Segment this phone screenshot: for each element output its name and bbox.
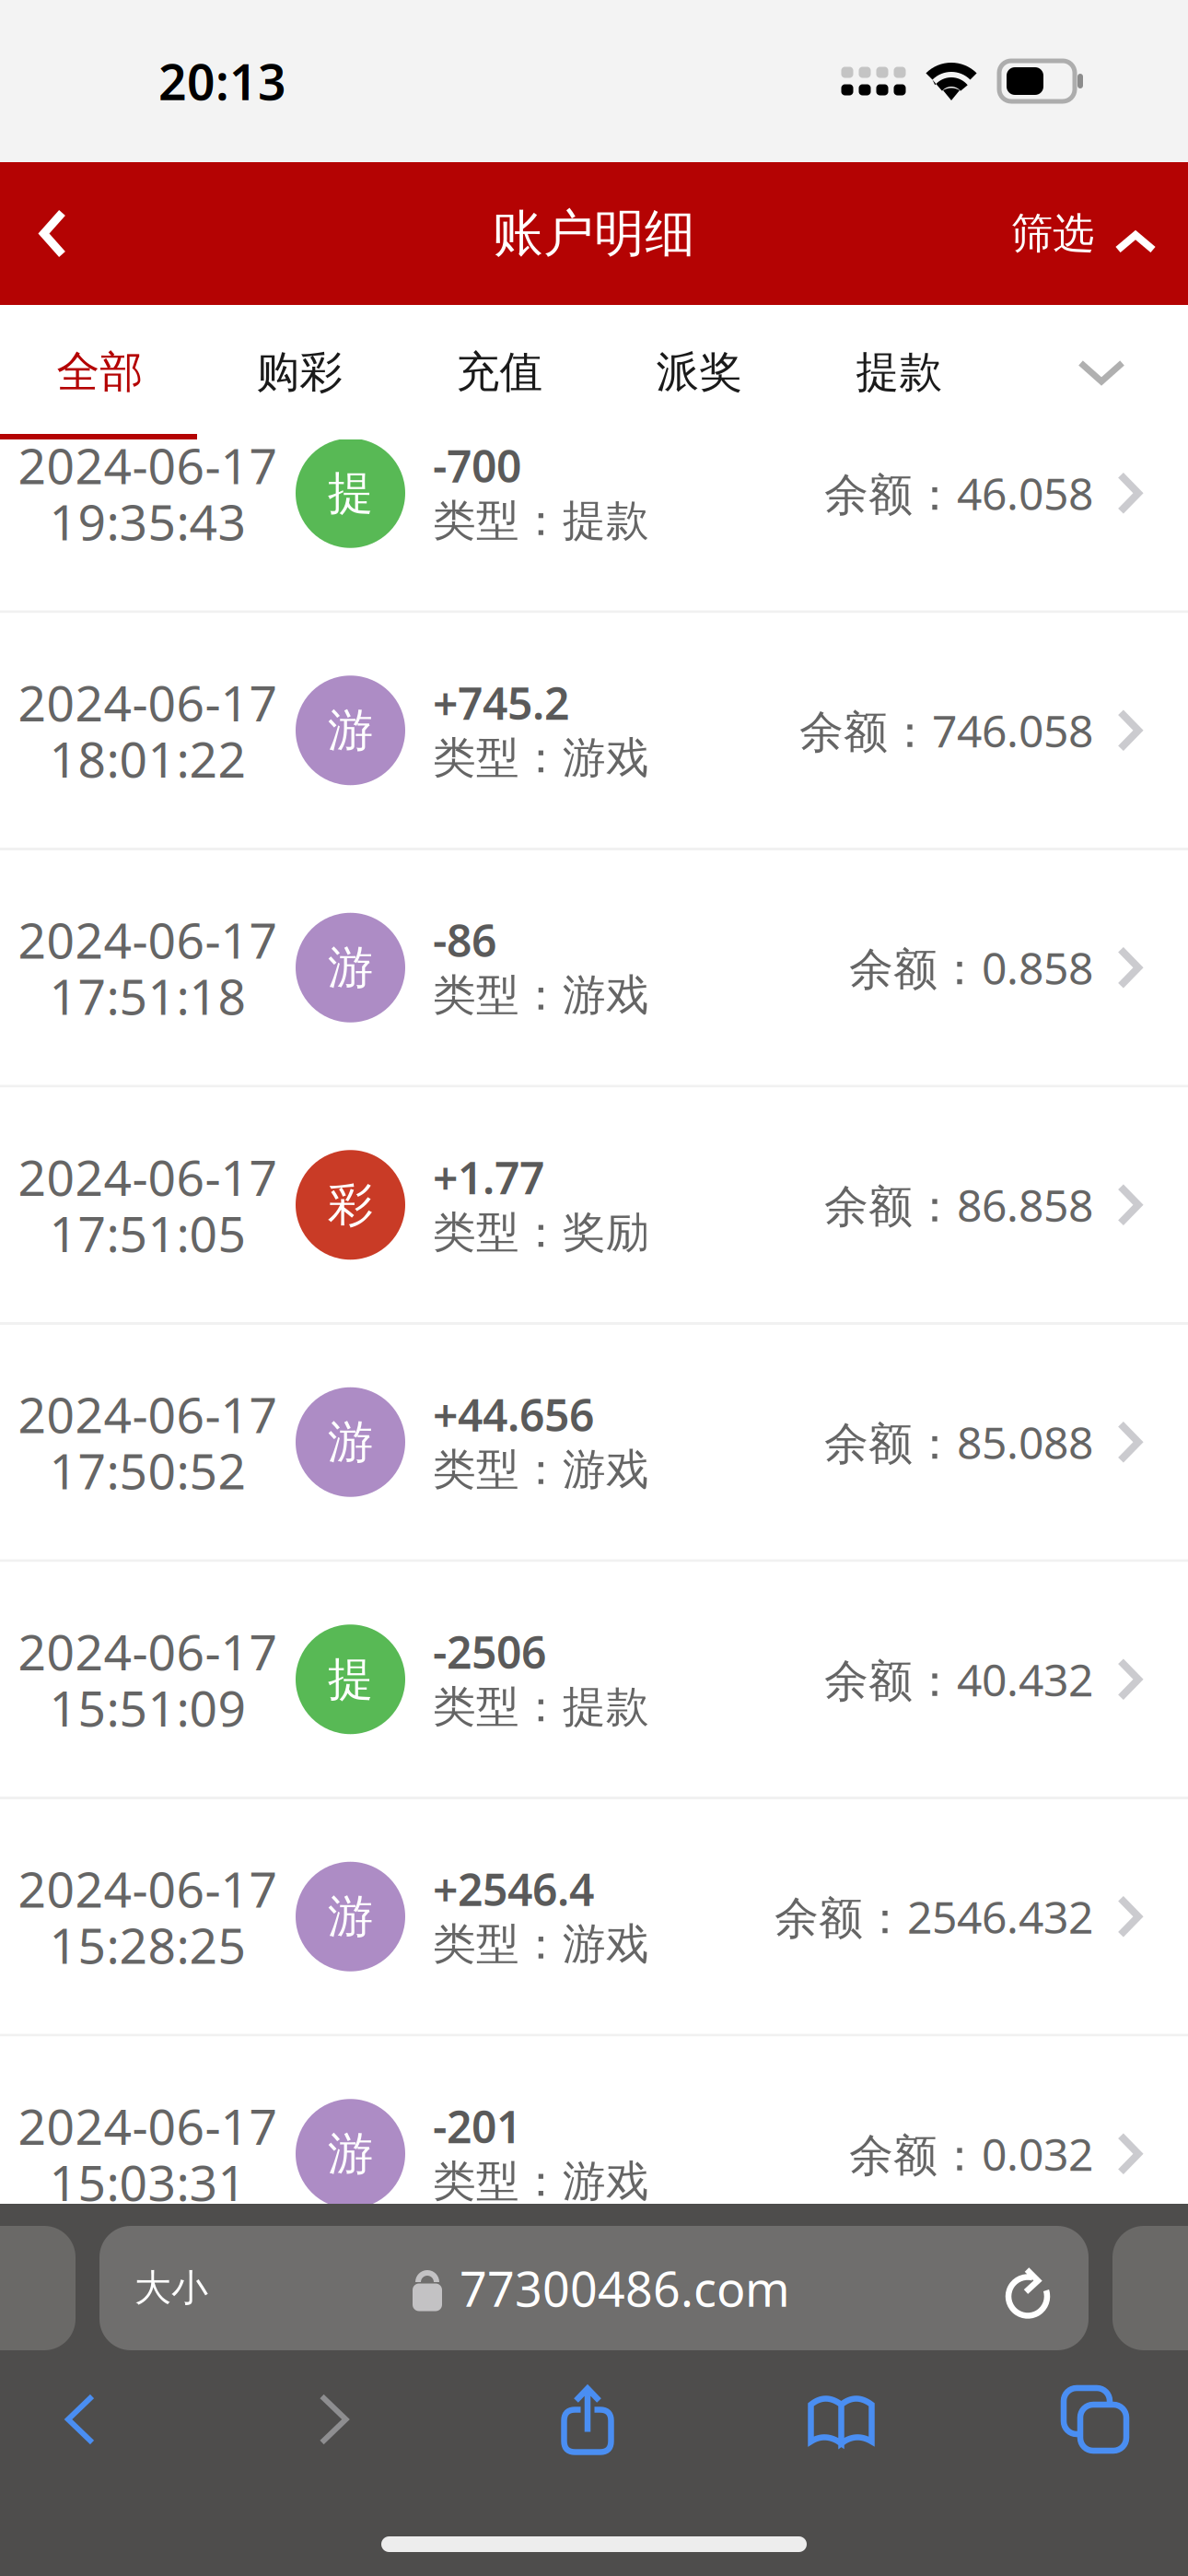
- staticText: 游: [328, 2126, 373, 2182]
- staticText: 余额：746.058: [799, 2362, 1093, 2420]
- staticText: 提: [328, 1651, 373, 1707]
- button[interactable]: 充值: [400, 305, 600, 439]
- staticText: 类型：提款: [433, 1681, 649, 1733]
- button[interactable]: 2024-06-17: [0, 1325, 1188, 1559]
- staticText: 全部: [57, 346, 143, 399]
- staticText: 2024-06-17: [18, 432, 278, 498]
- staticText: -700: [433, 436, 521, 495]
- staticText: 2024-06-17: [18, 2330, 278, 2396]
- staticText: 18:01:22: [49, 2386, 246, 2452]
- staticText: 2024-06-17: [18, 1381, 278, 1447]
- staticText: 类型：游戏: [433, 1918, 649, 1971]
- button[interactable]: 全部: [0, 305, 200, 439]
- staticText: 2024-06-17: [18, 670, 278, 735]
- staticText: 77300486.com: [460, 2256, 790, 2320]
- staticText: 游: [328, 1414, 373, 1470]
- button[interactable]: 2024-06-17: [0, 376, 1188, 610]
- staticText: 15:51:09: [49, 1675, 246, 1740]
- button[interactable]: 筛选: [1011, 162, 1188, 305]
- button[interactable]: Bookmarks: [761, 2369, 921, 2470]
- staticText: +1.77: [433, 1148, 544, 1207]
- button[interactable]: 派奖: [600, 305, 799, 439]
- staticText: 2024-06-17: [18, 1619, 278, 1684]
- staticText: 2024-06-17: [18, 2093, 278, 2158]
- button[interactable]: 大小: [99, 2226, 1089, 2350]
- staticText: 类型：游戏: [433, 2392, 649, 2445]
- button[interactable]: 2024-06-17: [0, 1088, 1188, 1322]
- staticText: 类型：游戏: [433, 2155, 649, 2208]
- button[interactable]: 2024-06-17: [0, 2037, 1188, 2271]
- button[interactable]: Back: [0, 2369, 160, 2470]
- button[interactable]: 2024-06-17: [0, 1799, 1188, 2034]
- staticText: 游: [328, 703, 373, 758]
- button[interactable]: 2024-06-17: [0, 2274, 1188, 2508]
- staticText: 17:51:05: [49, 1200, 246, 1266]
- staticText: 游: [328, 1889, 373, 1945]
- staticText: 余额：40.432: [824, 1650, 1093, 1709]
- staticText: 18:01:22: [49, 726, 246, 791]
- staticText: 余额：0.858: [849, 938, 1093, 997]
- staticText: 2024-06-17: [18, 1144, 278, 1209]
- staticText: 2024-06-17: [18, 1856, 278, 1921]
- staticText: 游: [328, 2363, 373, 2419]
- staticText: 余额：0.032: [849, 2124, 1093, 2183]
- staticText: 类型：游戏: [433, 1443, 649, 1496]
- staticText: 账户明细: [493, 203, 695, 264]
- staticText: +44.656: [433, 1385, 594, 1444]
- staticText: 余额：46.058: [824, 464, 1093, 522]
- staticText: 类型：奖励: [433, 1206, 649, 1259]
- staticText: +2546.4: [433, 1860, 594, 1918]
- staticText: 派奖: [656, 346, 743, 399]
- button[interactable]: Forward: [254, 2369, 414, 2470]
- staticText: -2506: [433, 1622, 546, 1681]
- staticText: 17:51:18: [49, 963, 246, 1028]
- staticText: 彩: [328, 1177, 373, 1233]
- button[interactable]: Back: [0, 162, 106, 305]
- button[interactable]: Tabs: [1015, 2369, 1175, 2470]
- staticText: -86: [433, 911, 496, 969]
- staticText: 筛选: [1011, 208, 1094, 259]
- staticText: 15:28:25: [49, 1912, 246, 1977]
- staticText: 充值: [456, 346, 543, 399]
- staticText: 购彩: [256, 346, 343, 399]
- button[interactable]: 2024-06-17: [0, 850, 1188, 1085]
- button[interactable]: 2024-06-17: [0, 613, 1188, 848]
- staticText: 类型：游戏: [433, 969, 649, 1022]
- staticText: 余额：86.858: [824, 1176, 1093, 1234]
- staticText: +745.2: [433, 673, 569, 732]
- staticText: 提款: [856, 346, 943, 399]
- staticText: 类型：游戏: [433, 732, 649, 784]
- staticText: 20:13: [158, 48, 286, 114]
- button[interactable]: Expand filters: [1015, 305, 1188, 439]
- staticText: 余额：2546.432: [775, 1887, 1093, 1946]
- staticText: 类型：提款: [433, 494, 649, 547]
- staticText: 大小: [134, 2265, 208, 2311]
- staticText: 提: [328, 465, 373, 521]
- staticText: 15:03:31: [49, 2149, 246, 2214]
- button[interactable]: Share: [507, 2369, 668, 2470]
- staticText: 余额：746.058: [799, 701, 1093, 760]
- staticText: 19:35:43: [49, 489, 246, 554]
- button[interactable]: 购彩: [200, 305, 400, 439]
- staticText: 游: [328, 940, 373, 996]
- button[interactable]: 提款: [799, 305, 999, 439]
- staticText: 2024-06-17: [18, 907, 278, 972]
- button[interactable]: 2024-06-17: [0, 1562, 1188, 1797]
- staticText: +745.2: [433, 2334, 569, 2393]
- staticText: 余额：85.088: [824, 1413, 1093, 1471]
- staticText: 17:50:52: [49, 1438, 246, 1503]
- staticText: -201: [433, 2097, 521, 2156]
